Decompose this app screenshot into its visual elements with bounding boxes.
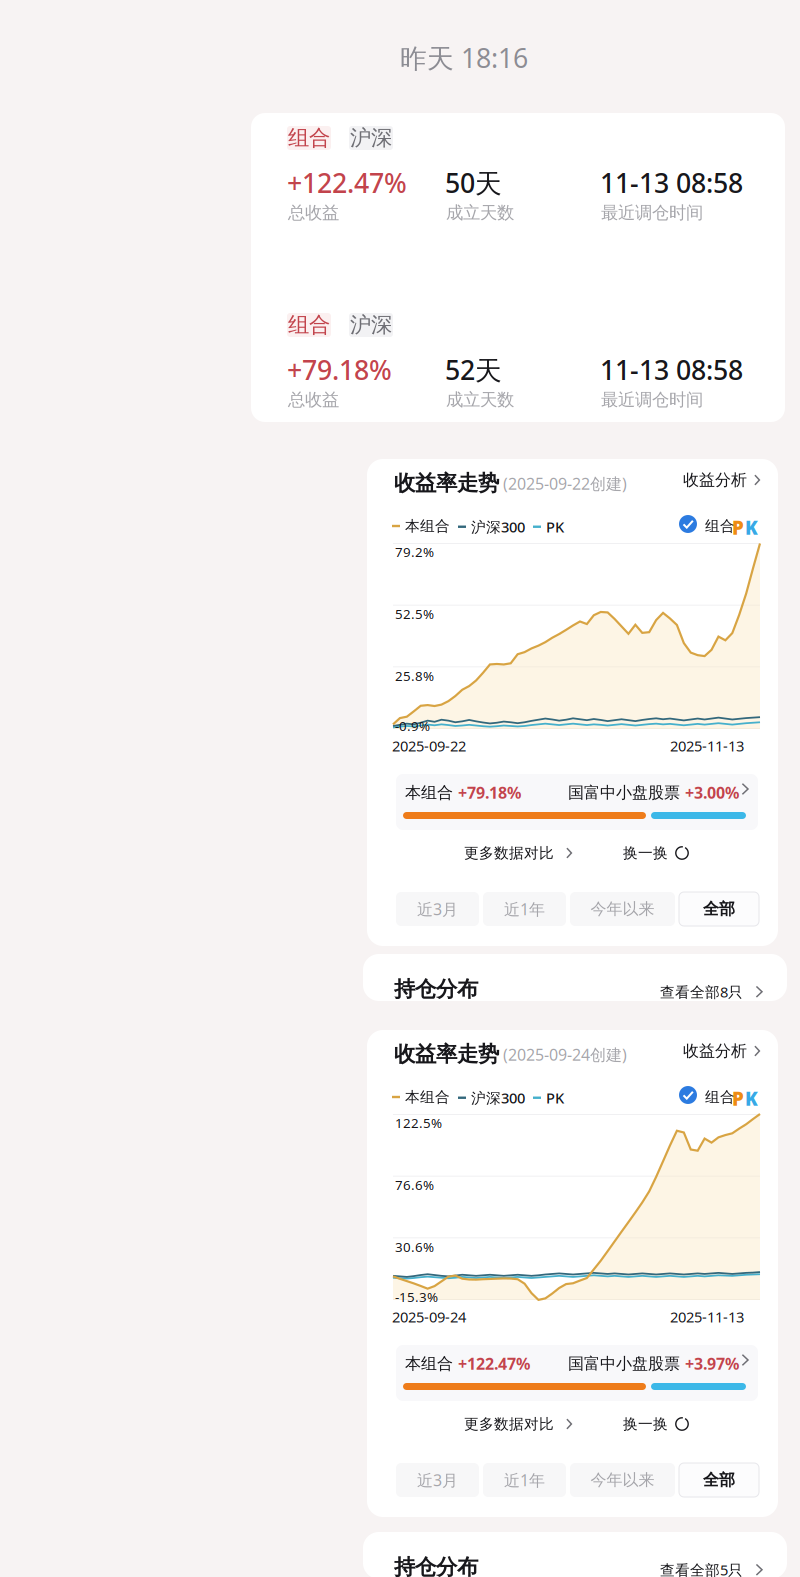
staticText: 组合 — [705, 1088, 735, 1106]
staticText: 成立天数 — [446, 389, 514, 410]
staticText: K — [745, 515, 758, 540]
staticText: K — [745, 1086, 758, 1111]
staticText: 本组合 — [405, 1088, 450, 1106]
staticText: P — [732, 515, 744, 540]
staticText: 成立天数 — [446, 202, 514, 223]
button[interactable]: 近3月 — [396, 1463, 479, 1497]
staticText: P — [732, 1086, 744, 1111]
button[interactable]: 收益分析 — [683, 467, 763, 493]
button[interactable]: 换一换 — [623, 1411, 693, 1437]
staticText: 查看全部5只 — [660, 1560, 743, 1577]
staticText: 79.2% — [395, 543, 434, 561]
staticText: PK — [546, 1088, 564, 1107]
staticText: 30.6% — [395, 1238, 434, 1256]
staticText: 11-13 08:58 — [600, 352, 743, 387]
staticText: 今年以来 — [590, 1470, 654, 1490]
staticText: 全部 — [703, 899, 735, 919]
staticText: 25.8% — [395, 667, 434, 685]
staticText: 查看全部8只 — [660, 982, 743, 1001]
staticText: +122.47% — [287, 165, 407, 200]
staticText: 52.5% — [395, 605, 434, 623]
staticText: 国富中小盘股票 — [568, 783, 685, 802]
staticText: 国富中小盘股票 — [568, 1354, 685, 1373]
staticText: 沪深 — [350, 312, 392, 338]
staticText: 持仓分布 — [394, 976, 478, 1002]
button[interactable]: 全部 — [679, 892, 759, 926]
staticText: 2025-11-13 — [670, 736, 744, 755]
staticText: 持仓分布 — [394, 1554, 478, 1577]
staticText: 更多数据对比 — [464, 1415, 554, 1433]
staticText: 总收益 — [288, 389, 339, 410]
staticText: 沪深300 — [471, 1088, 525, 1107]
staticText: 最近调仓时间 — [601, 389, 703, 410]
staticText: +79.18% — [458, 782, 521, 803]
staticText: 52天 — [445, 352, 502, 387]
button[interactable]: 更多数据对比 — [464, 840, 572, 866]
staticText: 近1年 — [504, 1469, 545, 1491]
staticText: 沪深 — [350, 125, 392, 151]
button[interactable]: 持仓分布 — [363, 1532, 787, 1577]
staticText: 收益分析 — [683, 1041, 747, 1061]
staticText: 全部 — [703, 1470, 735, 1490]
staticText: +122.47% — [458, 1353, 530, 1374]
staticText: 更多数据对比 — [464, 844, 554, 862]
staticText: 2025-09-24 — [392, 1307, 466, 1326]
staticText: 近1年 — [504, 898, 545, 920]
staticText: 组合 — [288, 312, 330, 338]
staticText: 50天 — [445, 165, 502, 200]
staticText: (2025-09-24创建) — [503, 1044, 627, 1065]
staticText: 本组合 — [405, 1354, 458, 1373]
staticText: 总收益 — [288, 202, 339, 223]
button[interactable]: 换一换 — [623, 840, 693, 866]
staticText: 2025-11-13 — [670, 1307, 744, 1326]
staticText: 近3月 — [417, 898, 458, 920]
staticText: +3.00% — [685, 782, 739, 803]
staticText: 换一换 — [623, 844, 668, 862]
staticText: 沪深300 — [471, 517, 525, 536]
staticText: 最近调仓时间 — [601, 202, 703, 223]
staticText: 收益率走势 — [394, 470, 499, 496]
staticText: 11-13 08:58 — [600, 165, 743, 200]
staticText: 2025-09-22 — [392, 736, 466, 755]
staticText: -0.9% — [395, 717, 430, 735]
staticText: +3.97% — [685, 1353, 739, 1374]
staticText: 本组合 — [405, 517, 450, 535]
button[interactable]: 全部 — [679, 1463, 759, 1497]
staticText: 76.6% — [395, 1176, 434, 1194]
staticText: 近3月 — [417, 1469, 458, 1491]
staticText: 122.5% — [395, 1114, 442, 1132]
staticText: 今年以来 — [590, 899, 654, 919]
staticText: 本组合 — [405, 783, 458, 802]
button[interactable]: 收益分析 — [683, 1038, 763, 1064]
button[interactable]: 近1年 — [483, 1463, 566, 1497]
staticText: 收益分析 — [683, 470, 747, 490]
staticText: 收益率走势 — [394, 1041, 499, 1067]
button[interactable]: 近1年 — [483, 892, 566, 926]
staticText: PK — [546, 517, 564, 536]
staticText: (2025-09-22创建) — [503, 473, 627, 494]
staticText: 昨天 18:16 — [400, 40, 528, 75]
button[interactable]: 近3月 — [396, 892, 479, 926]
staticText: +79.18% — [287, 352, 392, 387]
staticText: 组合 — [288, 125, 330, 151]
button[interactable]: 今年以来 — [570, 892, 675, 926]
staticText: -15.3% — [395, 1288, 438, 1306]
button[interactable]: 更多数据对比 — [464, 1411, 572, 1437]
staticText: 换一换 — [623, 1415, 668, 1433]
staticText: 组合 — [705, 517, 735, 535]
button[interactable]: 今年以来 — [570, 1463, 675, 1497]
button[interactable]: 持仓分布 — [363, 954, 787, 1001]
